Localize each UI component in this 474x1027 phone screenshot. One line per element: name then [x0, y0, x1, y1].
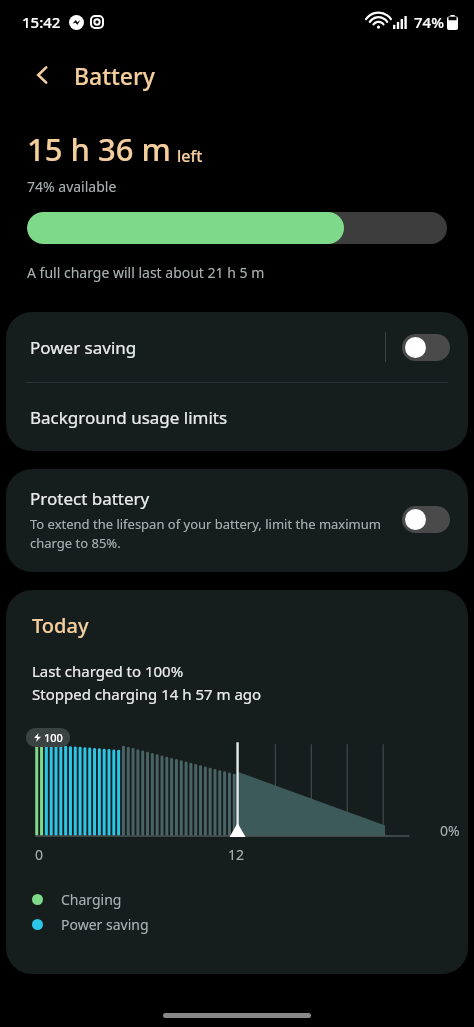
- staticText: left: [177, 145, 203, 167]
- staticText: 0%: [440, 821, 460, 840]
- staticText: 74%: [414, 12, 444, 32]
- staticText: Power saving: [30, 336, 385, 359]
- staticText: 15:42: [22, 12, 61, 32]
- staticText: 15 h 36 m: [27, 128, 171, 170]
- button[interactable]: Toggle: [402, 506, 450, 533]
- button[interactable]: Background usage limits: [6, 383, 468, 451]
- staticText: 74% available: [27, 177, 117, 196]
- button[interactable]: Toggle: [402, 334, 450, 361]
- staticText: A full charge will last about 21 h 5 m: [27, 263, 265, 282]
- staticText: Background usage limits: [30, 406, 228, 429]
- staticText: Charging: [61, 890, 122, 909]
- staticText: Last charged to 100%: [32, 661, 184, 681]
- staticText: Battery: [74, 60, 155, 91]
- staticText: 0: [35, 845, 44, 864]
- button[interactable]: Back: [26, 58, 60, 92]
- staticText: Power saving: [61, 915, 149, 934]
- staticText: To extend the lifespan of your battery, …: [30, 515, 390, 552]
- button[interactable]: Protect battery: [6, 469, 468, 572]
- staticText: Protect battery: [30, 487, 150, 510]
- staticText: 100: [44, 730, 63, 745]
- staticText: Stopped charging 14 h 57 m ago: [32, 684, 262, 704]
- staticText: 12: [228, 845, 245, 864]
- button[interactable]: Power saving: [6, 312, 468, 382]
- staticText: Today: [32, 612, 89, 639]
